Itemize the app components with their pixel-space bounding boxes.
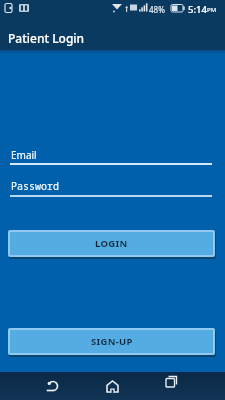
staticText: 5:14: [188, 3, 207, 16]
button[interactable]: [96, 372, 128, 400]
staticText: PM: [207, 6, 217, 14]
button[interactable]: LOGIN: [8, 230, 216, 258]
staticText: LOGIN: [95, 237, 128, 250]
button[interactable]: [36, 372, 68, 400]
staticText: Password: [11, 179, 59, 193]
button[interactable]: Email: [0, 146, 225, 168]
button[interactable]: Password: [0, 177, 225, 199]
staticText: 48%: [149, 4, 165, 15]
staticText: SIGN-UP: [91, 335, 133, 348]
button[interactable]: SIGN-UP: [8, 328, 216, 356]
staticText: Email: [11, 148, 37, 162]
staticText: Patient Login: [8, 30, 85, 46]
button[interactable]: [153, 372, 185, 400]
